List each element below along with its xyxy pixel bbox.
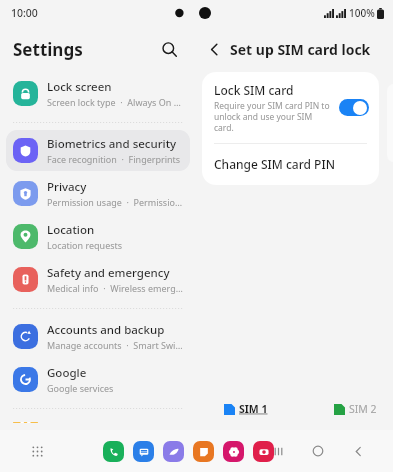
button[interactable]: Advanced features: [6, 416, 190, 429]
button[interactable]: SIM 1: [222, 400, 270, 418]
staticText: Medical info · Wireless emergency alerts: [47, 282, 184, 294]
button[interactable]: Biometrics and security: [6, 130, 190, 171]
button[interactable]: Search: [154, 34, 184, 64]
button[interactable]: Change SIM card PIN: [202, 144, 379, 185]
staticText: Manage accounts · Smart Switch: [47, 339, 184, 351]
button[interactable]: Accounts and backup: [6, 316, 190, 357]
staticText: SIM 1: [239, 402, 268, 416]
staticText: Face recognition · Fingerprints: [47, 153, 181, 165]
button[interactable]: Lock screen: [6, 73, 190, 114]
staticText: Settings: [13, 38, 83, 61]
button[interactable]: Location: [6, 216, 190, 257]
button[interactable]: Back: [201, 36, 227, 62]
button[interactable]: All apps: [24, 438, 50, 464]
button[interactable]: Phone: [103, 441, 124, 462]
button[interactable]: Back: [345, 438, 371, 464]
staticText: Location: [47, 222, 95, 238]
staticText: SIM 2: [349, 402, 377, 416]
button[interactable]: Lock SIM card: [202, 72, 379, 143]
staticText: Privacy: [47, 179, 87, 195]
staticText: Safety and emergency: [47, 265, 170, 281]
staticText: Change SIM card PIN: [214, 156, 335, 172]
button[interactable]: Messages: [133, 441, 154, 462]
staticText: Google: [47, 365, 87, 381]
staticText: 10:00: [11, 6, 38, 20]
staticText: Set up SIM card lock: [230, 40, 371, 59]
staticText: Lock SIM card: [214, 82, 294, 98]
staticText: Screen lock type · Always On Display: [47, 96, 184, 108]
staticText: Location requests: [47, 239, 123, 251]
staticText: Permission usage · Permission manager: [47, 196, 184, 208]
button[interactable]: Notes: [193, 441, 214, 462]
staticText: Require your SIM card PIN to unlock and …: [214, 100, 331, 133]
staticText: Biometrics and security: [47, 136, 177, 152]
button[interactable]: Recent apps: [265, 438, 291, 464]
button[interactable]: Lock SIM card toggle: [339, 99, 369, 116]
button[interactable]: Safety and emergency: [6, 259, 190, 300]
button[interactable]: Camera: [253, 441, 274, 462]
button[interactable]: Home: [305, 438, 331, 464]
button[interactable]: Gallery: [223, 441, 244, 462]
button[interactable]: Internet: [163, 441, 184, 462]
staticText: Accounts and backup: [47, 322, 165, 338]
button[interactable]: Privacy: [6, 173, 190, 214]
staticText: 100%: [349, 6, 375, 20]
staticText: Lock screen: [47, 79, 112, 95]
staticText: Google services: [47, 382, 114, 394]
button[interactable]: Google: [6, 359, 190, 400]
button[interactable]: SIM 2: [332, 400, 379, 418]
